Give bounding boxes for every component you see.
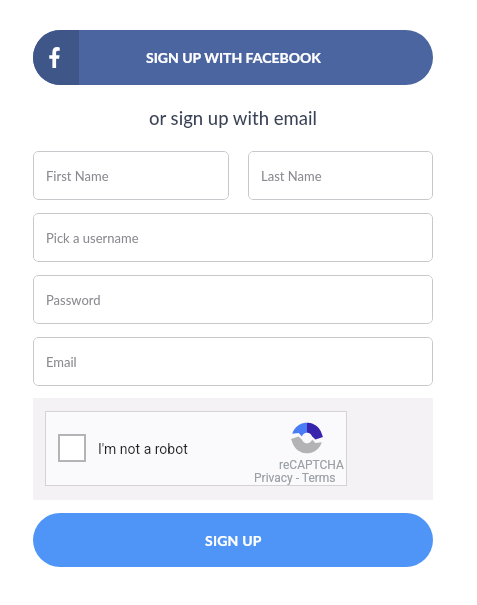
- button[interactable]: Facebook: [33, 30, 433, 85]
- other: Facebook: [49, 47, 60, 68]
- button[interactable]: SIGN UP: [33, 513, 433, 567]
- staticText: Privacy - Terms: [254, 471, 336, 485]
- button[interactable]: Password: [33, 275, 433, 324]
- staticText: First Name: [46, 168, 109, 184]
- button[interactable]: I am not a robot checkbox: [58, 434, 86, 462]
- button[interactable]: Last Name: [248, 151, 433, 200]
- staticText: SIGN UP WITH FACEBOOK: [146, 49, 321, 66]
- button[interactable]: First Name: [33, 151, 229, 200]
- staticText: or sign up with email: [149, 107, 317, 129]
- other: reCAPTCHA logo: [290, 421, 324, 455]
- staticText: SIGN UP: [205, 532, 262, 549]
- staticText: Password: [46, 292, 101, 308]
- staticText: Last Name: [261, 168, 322, 184]
- staticText: I'm not a robot: [98, 441, 188, 457]
- staticText: Pick a username: [46, 230, 139, 246]
- button[interactable]: Email: [33, 337, 433, 386]
- staticText: Email: [46, 354, 77, 370]
- button[interactable]: I am not a robot checkbox: [45, 411, 347, 486]
- staticText: reCAPTCHA: [279, 458, 344, 472]
- button[interactable]: Pick a username: [33, 213, 433, 262]
